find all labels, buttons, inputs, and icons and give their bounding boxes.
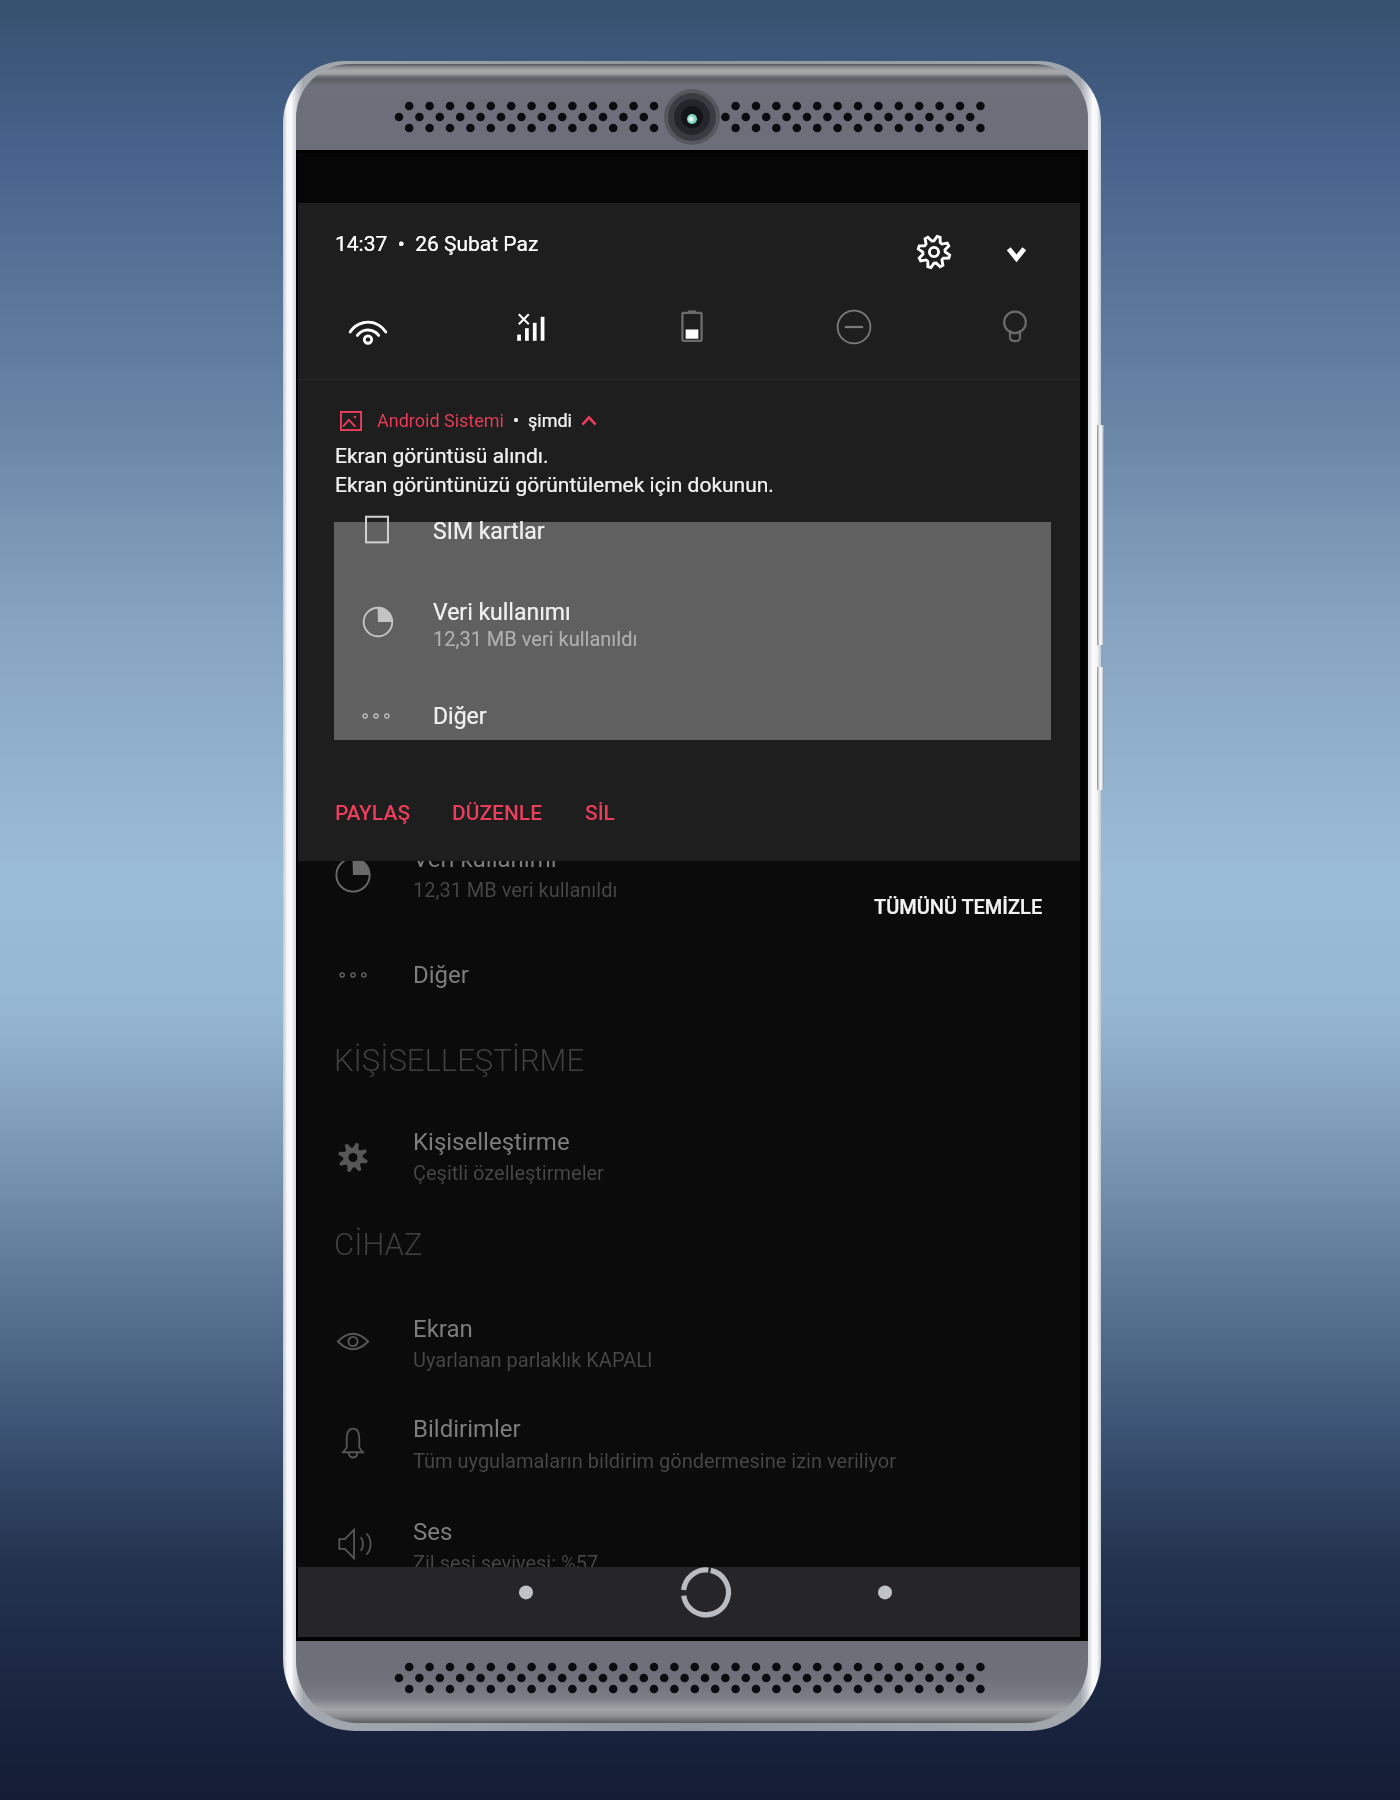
staticText: Diğer <box>433 703 487 730</box>
staticText: Kişiselleştirme <box>413 1128 570 1156</box>
button[interactable] <box>298 1300 1080 1390</box>
staticText: 12,31 MB veri kullanıldı <box>433 627 638 650</box>
button[interactable]: Battery <box>658 293 726 361</box>
button[interactable]: Wi-Fi <box>334 293 402 361</box>
button[interactable] <box>298 940 1080 1010</box>
button[interactable]: TÜMÜNÜ TEMİZLE <box>860 886 1057 927</box>
staticText: KİŞİSELLEŞTİRME <box>334 1042 585 1078</box>
staticText: Diğer <box>413 961 469 989</box>
button[interactable]: Flashlight <box>981 293 1049 361</box>
button[interactable]: Home <box>670 1567 742 1637</box>
button[interactable]: SİL <box>573 791 627 836</box>
button[interactable] <box>298 1402 1080 1492</box>
staticText: Bildirimler <box>413 1415 521 1443</box>
staticText: SIM kartlar <box>433 518 545 545</box>
staticText: Tüm uygulamaların bildirim göndermesine … <box>413 1449 896 1472</box>
staticText: 12,31 MB veri kullanıldı <box>413 878 618 901</box>
button[interactable]: PAYLAŞ <box>323 791 423 836</box>
staticText: Veri kullanımı <box>433 599 571 626</box>
staticText: şimdi <box>528 410 572 431</box>
staticText: SİL <box>585 801 615 826</box>
staticText: Zil sesi seviyesi: %57 <box>413 1551 599 1574</box>
staticText: Çeşitli özelleştirmeler <box>413 1161 604 1184</box>
staticText: TÜMÜNÜ TEMİZLE <box>874 895 1043 918</box>
staticText: 14:37 • 26 Şubat Paz <box>335 232 539 257</box>
button[interactable]: Quick settings <box>906 224 962 280</box>
staticText: Android Sistemi <box>377 410 504 431</box>
button[interactable]: Do not disturb <box>820 293 888 361</box>
staticText: Uyarlanan parlaklık KAPALI <box>413 1348 653 1371</box>
staticText: CİHAZ <box>334 1226 423 1262</box>
staticText: Ekran görüntünüzü görüntülemek için doku… <box>335 473 774 498</box>
button[interactable]: Recents <box>849 1567 921 1637</box>
staticText: Veri kullanımı <box>413 845 557 873</box>
staticText: • <box>504 410 528 431</box>
staticText: Ses <box>413 1518 453 1546</box>
button[interactable]: 14:37 • 26 Şubat Paz <box>327 226 547 263</box>
button[interactable] <box>298 1505 1080 1575</box>
button[interactable]: DÜZENLE <box>440 791 555 836</box>
button[interactable]: Back <box>490 1567 562 1637</box>
staticText: Ekran görüntüsü alındı. <box>335 444 549 469</box>
button[interactable] <box>298 392 1080 454</box>
staticText: Ekran <box>413 1315 473 1343</box>
button[interactable]: Expand quick settings <box>988 225 1044 281</box>
button[interactable]: SIM kartlar <box>334 522 1051 740</box>
button[interactable] <box>298 1115 1080 1205</box>
staticText: DÜZENLE <box>452 801 543 826</box>
button[interactable]: Mobile signal <box>496 293 564 361</box>
staticText: PAYLAŞ <box>335 801 411 826</box>
